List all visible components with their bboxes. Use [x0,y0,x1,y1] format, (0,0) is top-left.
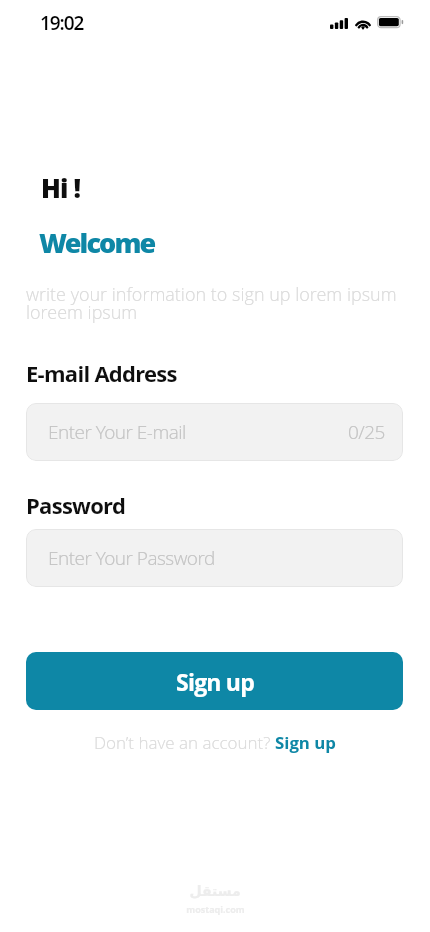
staticText: 19:02 [40,10,84,36]
staticText: write your information to sign up lorem … [26,282,404,324]
staticText: mostaqi.com [186,903,245,915]
staticText: Password [26,490,126,520]
other: Cellular signal [330,18,348,29]
staticText: Sign up [275,731,336,754]
other: Wi-Fi [354,16,372,30]
staticText: Hi ! [41,170,81,205]
button[interactable]: Sign up [26,652,403,710]
staticText: Don’t have an account? [94,731,275,754]
staticText: E-mail Address [26,358,177,388]
button[interactable]: Enter Your E-mail [26,403,403,461]
button[interactable]: Enter Your Password [26,529,403,587]
staticText: Welcome [39,224,155,261]
button[interactable]: Sign up [275,731,336,754]
staticText: مستقل [189,883,241,899]
staticText: Enter Your E-mail [48,419,186,445]
staticText: Sign up [176,666,254,697]
staticText: 0/25 [348,419,385,445]
staticText: Enter Your Password [48,545,215,571]
other: Battery [377,16,404,29]
